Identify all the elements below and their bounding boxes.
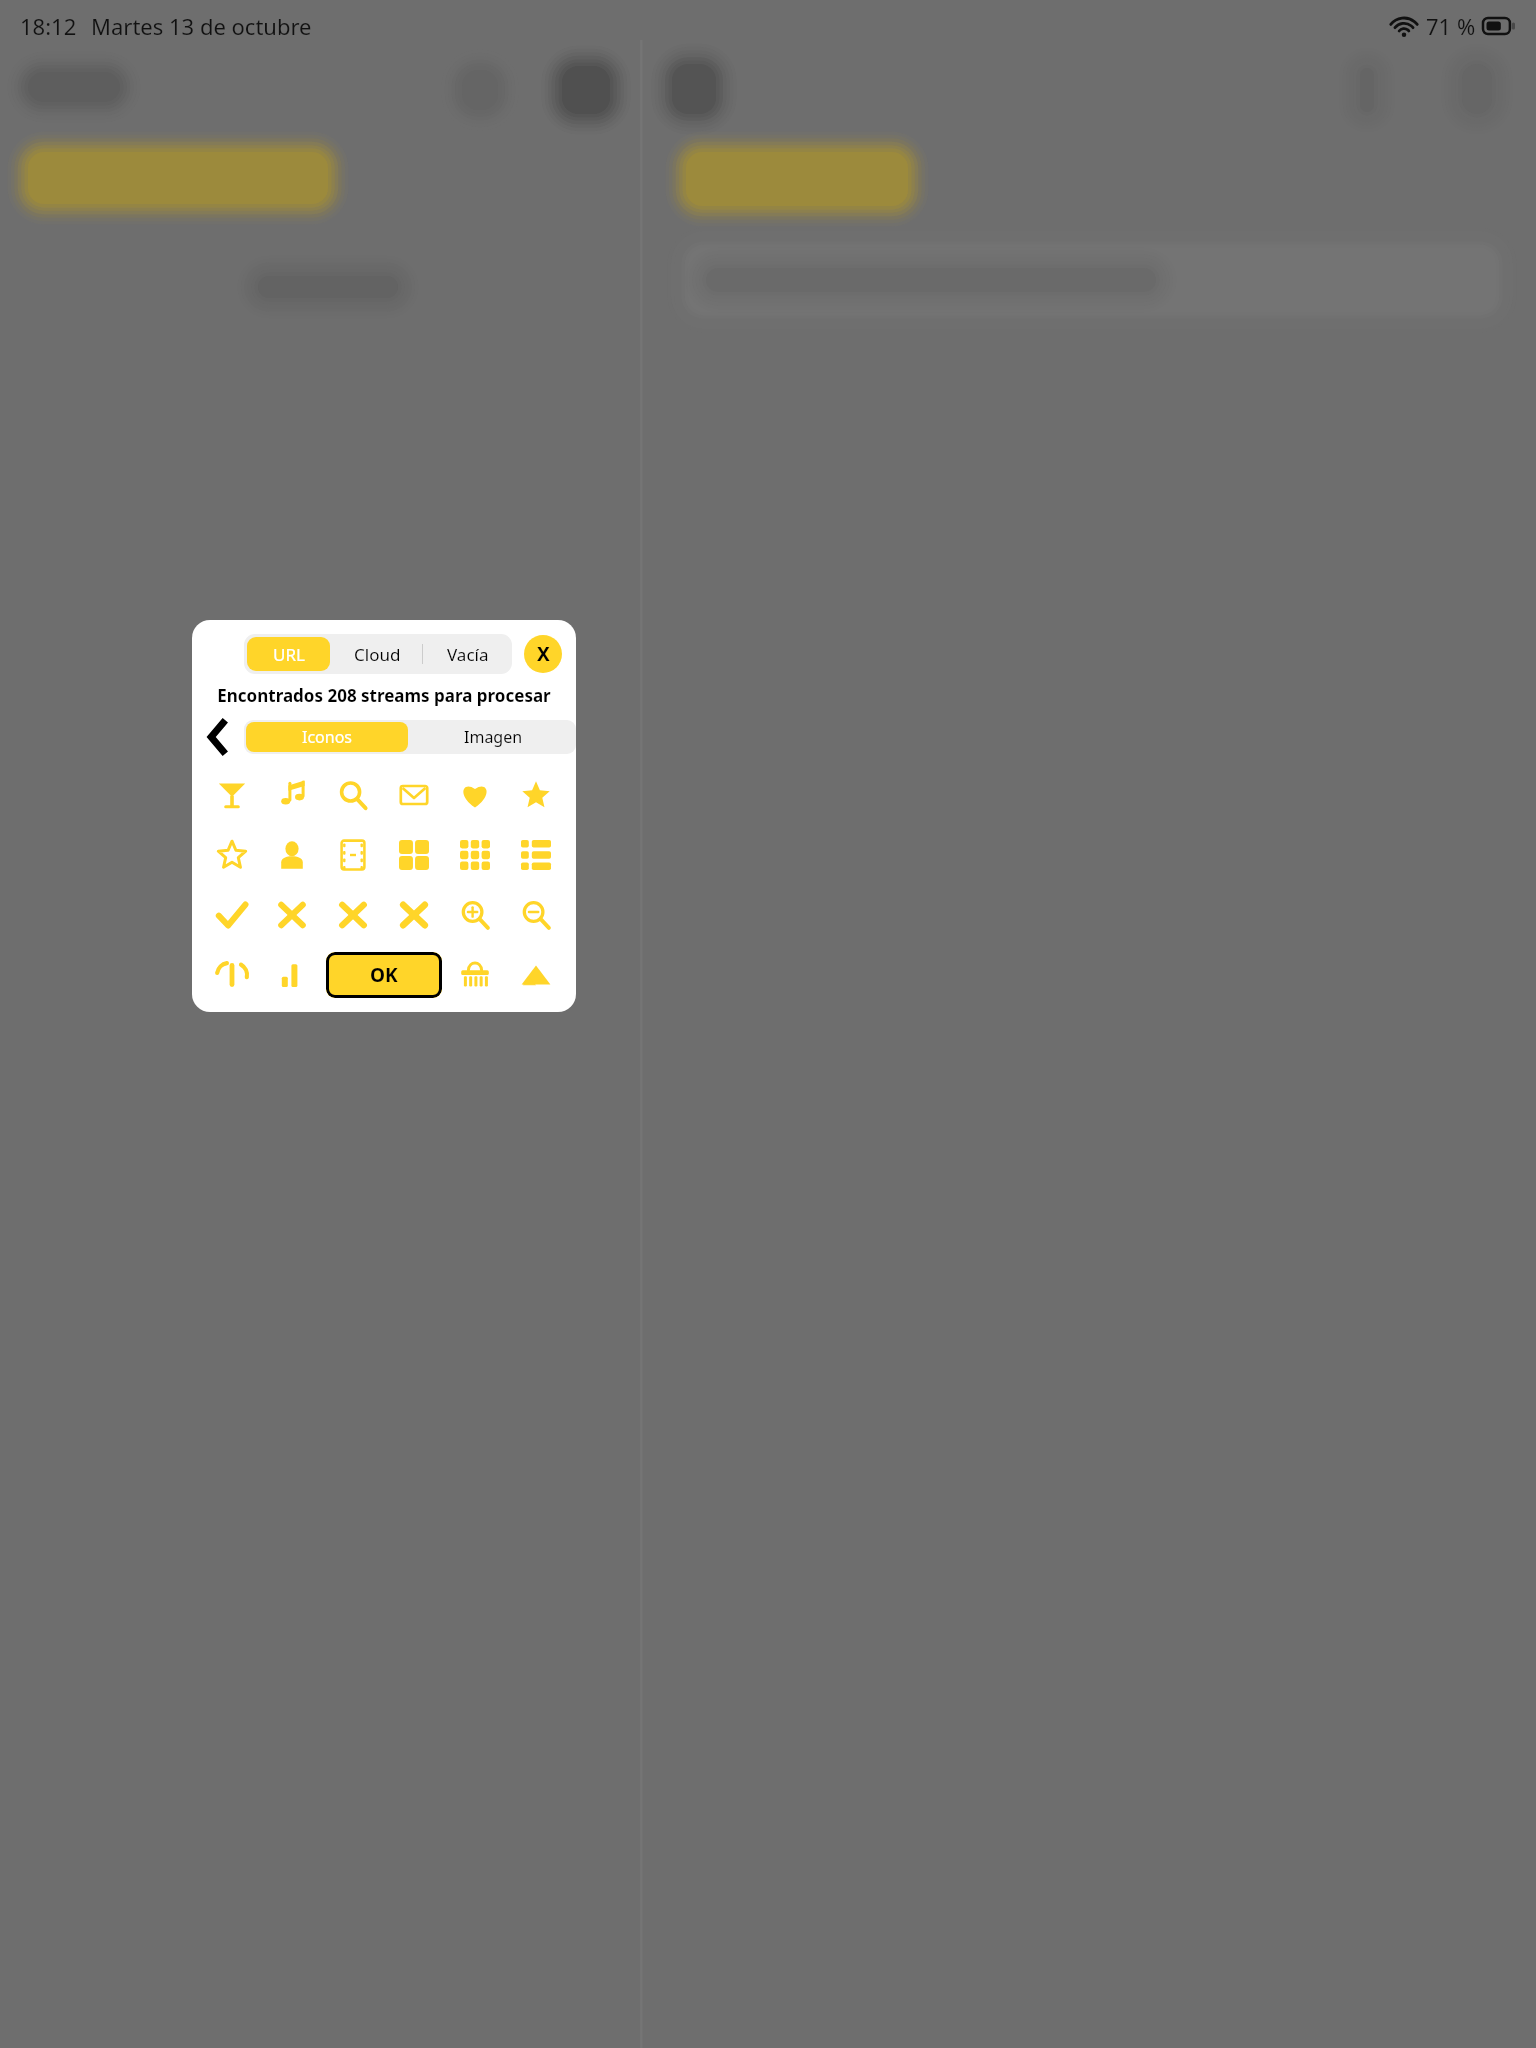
staticText: Martes 13 de octubre (91, 11, 312, 41)
button[interactable]: Estrella (505, 765, 566, 825)
staticText: Encontrados 208 streams para procesar (192, 684, 576, 707)
button[interactable]: Música (262, 765, 322, 825)
button[interactable]: Montaña (505, 945, 566, 1005)
button[interactable]: Iconos (246, 722, 408, 752)
button[interactable]: Aceptar (202, 885, 262, 945)
staticText: Vacía (447, 643, 489, 666)
button[interactable]: Cerrar (524, 635, 562, 673)
button[interactable]: Acercar (444, 885, 505, 945)
button[interactable]: Copa (202, 765, 262, 825)
button[interactable]: Barras (262, 945, 322, 1005)
staticText: X (537, 641, 550, 667)
button[interactable]: Cuadrícula 3x3 (444, 825, 505, 885)
button[interactable]: Correo (383, 765, 444, 825)
button[interactable]: Gráfico (202, 945, 262, 1005)
button[interactable]: Cuadrícula 2x2 (383, 825, 444, 885)
button[interactable]: Ajustes (322, 945, 383, 1005)
button[interactable]: Cesta (444, 945, 505, 1005)
button[interactable]: Cancelar (322, 885, 383, 945)
staticText: URL (273, 643, 305, 666)
button[interactable]: Atrás (192, 719, 244, 755)
button[interactable]: Estrella contorno (202, 825, 262, 885)
button[interactable]: Favorito (444, 765, 505, 825)
button[interactable]: Borrar (383, 885, 444, 945)
button[interactable]: Buscar (322, 765, 383, 825)
staticText: 71 % (1426, 11, 1476, 41)
button[interactable]: OK (326, 952, 442, 998)
button[interactable]: Imagen (410, 720, 576, 754)
staticText: 18:12 (20, 11, 77, 41)
button[interactable]: Película (322, 825, 383, 885)
staticText: OK (370, 962, 398, 988)
button[interactable]: URL (247, 637, 330, 671)
button[interactable]: Cloud (333, 634, 422, 674)
button[interactable]: Lista (505, 825, 566, 885)
staticText: Iconos (302, 726, 353, 748)
button[interactable]: Configuración (383, 945, 444, 1005)
button[interactable]: Vacía (423, 634, 512, 674)
button[interactable]: Usuario (262, 825, 322, 885)
button[interactable]: Alejar (505, 885, 566, 945)
staticText: Cloud (354, 643, 401, 666)
button[interactable]: Cerrar (262, 885, 322, 945)
staticText: Imagen (464, 726, 523, 748)
